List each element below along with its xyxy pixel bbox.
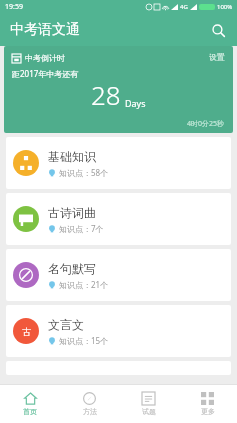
staticText: 知识点：58个 <box>59 167 109 178</box>
staticText: 知识点：15个 <box>59 335 109 346</box>
button[interactable]: 名句默写 <box>6 249 231 301</box>
staticText: Days <box>125 97 146 109</box>
staticText: 中考倒计时 <box>25 53 65 63</box>
staticText: 更多 <box>201 407 215 416</box>
staticText: 设置 <box>209 52 225 62</box>
staticText: 古诗词曲 <box>48 205 96 220</box>
button[interactable]: 设置 <box>209 52 225 62</box>
staticText: 距2017年中考还有 <box>12 68 79 79</box>
staticText: 基础知识 <box>48 149 96 164</box>
button[interactable]: 基础知识 <box>6 137 231 189</box>
staticText: 名句默写 <box>48 261 96 276</box>
button[interactable]: 方法 <box>60 385 119 423</box>
button[interactable]: 古 <box>6 305 231 357</box>
button[interactable]: 更多 <box>178 385 237 423</box>
staticText: 中考语文通 <box>10 21 80 39</box>
staticText: 首页 <box>23 407 37 416</box>
staticText: 28 <box>91 77 121 112</box>
staticText: 试题 <box>142 407 156 416</box>
staticText: 19:59 <box>5 2 23 12</box>
button[interactable]: 中考倒计时 <box>4 46 233 133</box>
staticText: 4G <box>180 3 188 11</box>
staticText: 知识点：7个 <box>59 223 104 234</box>
staticText: 100% <box>217 3 233 11</box>
staticText: 文言文 <box>48 317 84 332</box>
staticText: 古 <box>22 326 31 337</box>
button[interactable]: 古诗词曲 <box>6 193 231 245</box>
button[interactable]: Search <box>205 17 231 43</box>
button[interactable]: 首页 <box>0 385 60 423</box>
staticText: 知识点：21个 <box>59 279 109 290</box>
staticText: 4时0分25秒 <box>187 119 225 129</box>
button[interactable]: 试题 <box>119 385 178 423</box>
staticText: 方法 <box>83 407 97 416</box>
